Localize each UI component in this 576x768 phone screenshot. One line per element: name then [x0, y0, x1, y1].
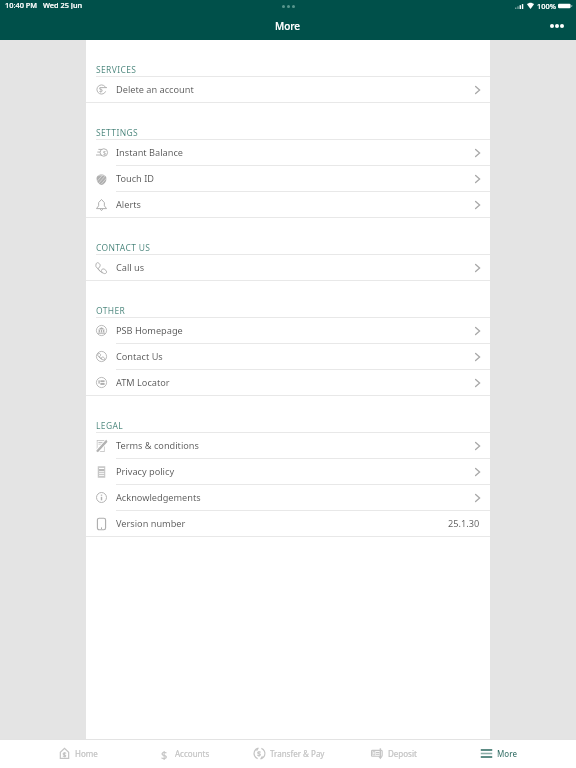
- staticText: Touch ID: [116, 172, 154, 185]
- staticText: Delete an account: [116, 83, 194, 96]
- button[interactable]: More options: [540, 17, 576, 37]
- staticText: Privacy policy: [116, 465, 175, 478]
- button[interactable]: Contact Us: [86, 344, 490, 369]
- button[interactable]: $: [236, 739, 341, 768]
- staticText: Deposit: [388, 748, 417, 759]
- staticText: 10:40 PM Wed 25 Jun: [5, 0, 83, 9]
- button[interactable]: Home: [25, 739, 131, 768]
- staticText: 100%: [537, 1, 556, 11]
- staticText: $: [257, 749, 262, 759]
- staticText: Call us: [116, 261, 145, 274]
- staticText: More: [275, 19, 301, 33]
- staticText: PSB Homepage: [116, 324, 183, 337]
- staticText: Acknowledgements: [116, 491, 201, 504]
- button[interactable]: PSB Homepage: [86, 318, 490, 343]
- staticText: ATM Locator: [116, 376, 170, 389]
- button[interactable]: $: [86, 77, 490, 102]
- button[interactable]: Privacy policy: [86, 459, 490, 484]
- button[interactable]: Touch ID: [86, 166, 490, 191]
- staticText: $: [161, 747, 168, 760]
- staticText: Alerts: [116, 198, 141, 211]
- button[interactable]: Alerts: [86, 192, 490, 217]
- staticText: OTHER: [96, 305, 126, 317]
- staticText: Instant Balance: [116, 146, 183, 159]
- staticText: LEGAL: [96, 420, 124, 432]
- staticText: Contact Us: [116, 350, 163, 363]
- button[interactable]: $: [131, 739, 236, 768]
- staticText: Accounts: [175, 748, 210, 759]
- staticText: $: [103, 149, 106, 156]
- staticText: $: [99, 85, 103, 94]
- staticText: CONTACT US: [96, 242, 151, 254]
- staticText: More: [497, 748, 518, 759]
- button[interactable]: Call us: [86, 255, 490, 280]
- button[interactable]: More: [446, 739, 551, 768]
- staticText: SERVICES: [96, 64, 137, 76]
- staticText: Version number: [116, 517, 186, 530]
- button[interactable]: Version number: [86, 511, 490, 536]
- button[interactable]: Terms & conditions: [86, 433, 490, 458]
- staticText: SETTINGS: [96, 127, 139, 139]
- button[interactable]: ATM Locator: [86, 370, 490, 395]
- button[interactable]: Deposit: [341, 739, 446, 768]
- staticText: Transfer & Pay: [270, 748, 325, 759]
- button[interactable]: Acknowledgements: [86, 485, 490, 510]
- staticText: Terms & conditions: [116, 439, 199, 452]
- button[interactable]: $: [86, 140, 490, 165]
- staticText: Home: [75, 748, 98, 759]
- staticText: 25.1.30: [448, 517, 480, 530]
